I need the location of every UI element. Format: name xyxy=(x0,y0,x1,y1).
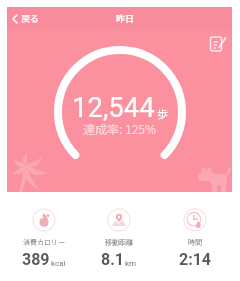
button[interactable]: 移動距離 xyxy=(83,208,155,269)
staticText: 歩 xyxy=(157,105,168,121)
button[interactable]: Edit note xyxy=(208,34,228,54)
button[interactable]: 消費カロリー xyxy=(8,208,80,269)
staticText: 戻る xyxy=(21,12,40,25)
button[interactable]: 戻る xyxy=(7,8,48,29)
staticText: 消費カロリー xyxy=(23,237,65,247)
staticText: kcal xyxy=(51,259,66,268)
staticText: 昨日 xyxy=(116,12,135,25)
button[interactable]: 時間 xyxy=(159,208,231,269)
staticText: km xyxy=(125,259,137,268)
staticText: 2:14 xyxy=(179,250,212,269)
staticText: 時間 xyxy=(188,237,202,247)
staticText: 8.1 xyxy=(101,250,124,269)
staticText: 389 xyxy=(22,250,50,269)
staticText: 移動距離 xyxy=(105,237,133,247)
staticText: 達成率: 125% xyxy=(83,120,157,137)
staticText: 12,544 xyxy=(72,91,155,123)
